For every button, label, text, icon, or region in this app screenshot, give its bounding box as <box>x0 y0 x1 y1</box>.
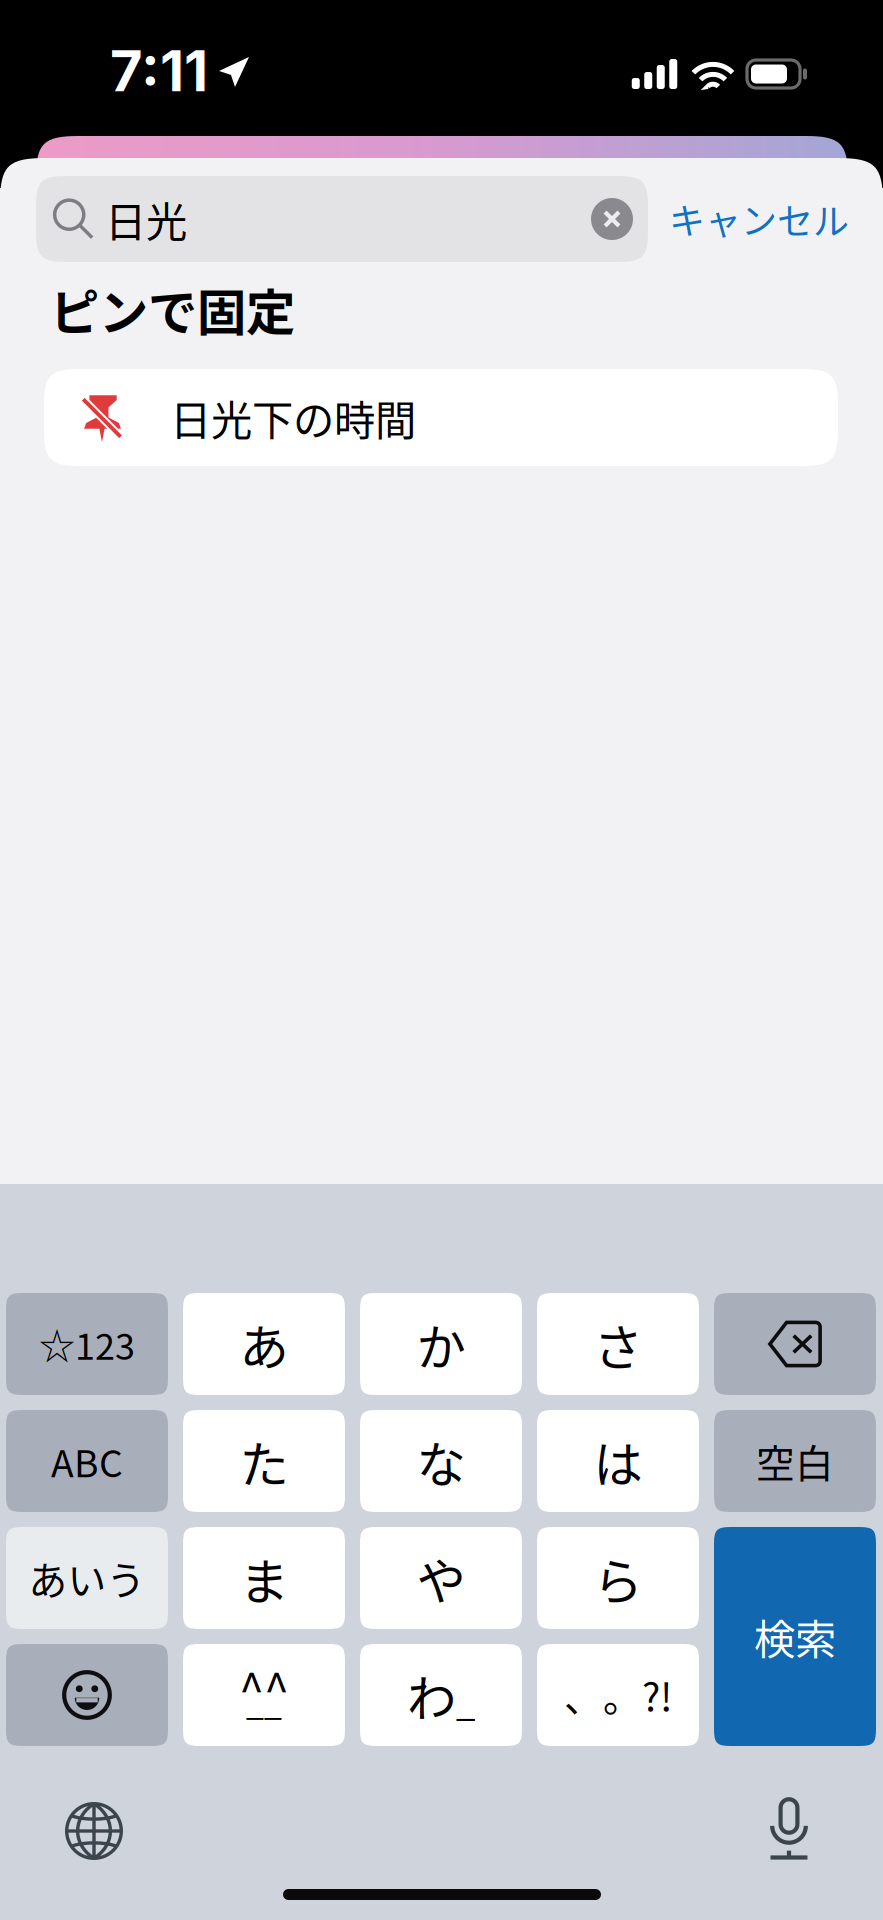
button[interactable]: 、。?! <box>537 1644 699 1746</box>
staticText: 7:11 <box>110 37 208 105</box>
button[interactable]: 日光下の時間 <box>44 369 838 466</box>
button[interactable]: な <box>360 1410 522 1512</box>
staticText: 検索 <box>754 1607 836 1666</box>
staticText: か <box>416 1308 465 1380</box>
staticText: ピンで固定 <box>50 273 295 345</box>
button[interactable]: わ <box>360 1644 522 1746</box>
staticText: _ <box>456 1676 475 1726</box>
button[interactable]: ら <box>537 1527 699 1629</box>
button[interactable]: ま <box>183 1527 345 1629</box>
button[interactable]: 空白 <box>714 1410 876 1512</box>
button[interactable]: ☆123 <box>6 1293 168 1395</box>
staticText: た <box>239 1425 288 1497</box>
staticText: あ <box>239 1308 288 1380</box>
button[interactable]: Next keyboard <box>65 1802 123 1860</box>
staticText: な <box>416 1425 465 1497</box>
button[interactable]: は <box>537 1410 699 1512</box>
staticText: ら <box>593 1542 642 1614</box>
staticText: は <box>593 1425 642 1497</box>
staticText: キャンセル <box>669 193 849 245</box>
staticText: あいう <box>28 1550 145 1606</box>
button[interactable]: Dictation <box>768 1798 810 1860</box>
button[interactable]: ABC <box>6 1410 168 1512</box>
staticText: わ <box>407 1659 456 1731</box>
staticText: や <box>416 1542 465 1614</box>
button[interactable]: キャンセル <box>669 176 883 262</box>
staticText: さ <box>593 1308 642 1380</box>
button[interactable]: ^^ <box>183 1644 345 1746</box>
staticText: ま <box>239 1542 288 1614</box>
staticText: __ <box>246 1678 282 1724</box>
staticText: 空白 <box>756 1433 834 1489</box>
button[interactable]: た <box>183 1410 345 1512</box>
button[interactable]: や <box>360 1527 522 1629</box>
staticText: 日光 <box>105 189 187 249</box>
button[interactable]: あいう <box>6 1527 168 1629</box>
button[interactable]: さ <box>537 1293 699 1395</box>
button[interactable]: 検索 <box>714 1527 876 1746</box>
staticText: 日光下の時間 <box>170 388 416 447</box>
button[interactable] <box>6 1644 168 1746</box>
staticText: ☆123 <box>39 1318 135 1370</box>
staticText: ^^ <box>239 1654 289 1720</box>
staticText: 、。?! <box>564 1667 672 1723</box>
button[interactable]: あ <box>183 1293 345 1395</box>
button[interactable] <box>714 1293 876 1395</box>
staticText: ABC <box>51 1434 123 1488</box>
button[interactable]: か <box>360 1293 522 1395</box>
